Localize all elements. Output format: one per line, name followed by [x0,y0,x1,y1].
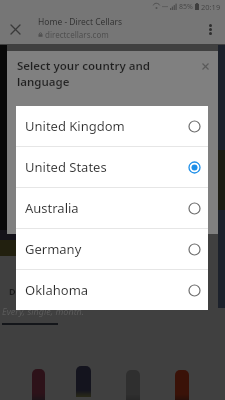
button[interactable]: More options [195,14,225,44]
staticText: 20:19 [201,2,221,12]
staticText: United Kingdom [25,117,188,135]
button[interactable]: Australia [16,188,208,228]
button[interactable]: Germany [16,229,208,269]
staticText: Select your country and language [17,58,198,90]
staticText: directcellars.com [45,29,109,40]
staticText: 85% [179,2,193,12]
staticText: Australia [25,199,188,217]
staticText: United States [25,158,188,176]
staticText: D [9,285,16,297]
staticText: Every, single, month. [2,305,85,317]
button[interactable]: Oklahoma [16,270,208,310]
button[interactable]: United States [16,147,208,187]
staticText: Germany [25,240,188,258]
button[interactable]: United Kingdom [16,106,208,146]
button[interactable]: Close dialog [198,59,212,73]
button[interactable]: Close [0,14,30,44]
staticText: Oklahoma [25,281,188,299]
staticText: Home - Direct Cellars [38,16,123,28]
